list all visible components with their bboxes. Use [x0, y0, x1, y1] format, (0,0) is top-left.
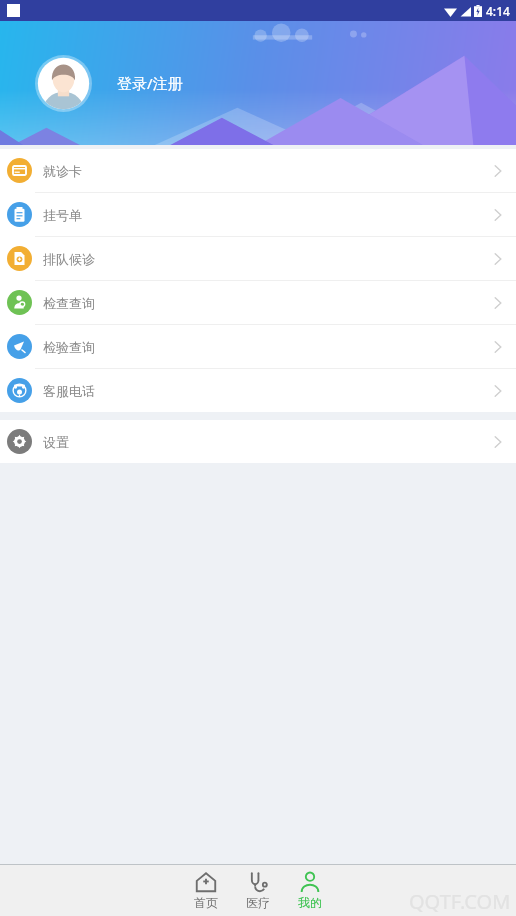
staticText: 检查查询	[43, 295, 95, 311]
staticText: 首页	[194, 895, 218, 910]
button[interactable]: 检查查询	[0, 281, 516, 324]
button[interactable]: 首页	[180, 865, 232, 916]
staticText: 排队候诊	[43, 251, 95, 267]
staticText: 登录/注册	[117, 73, 183, 93]
button[interactable]: 医疗	[232, 865, 284, 916]
button[interactable]: 客服电话	[0, 369, 516, 412]
staticText: 检验查询	[43, 339, 95, 355]
staticText: 4:14	[486, 3, 510, 19]
staticText: 设置	[43, 434, 69, 450]
staticText: 医疗	[246, 895, 270, 910]
staticText: 客服电话	[43, 383, 95, 399]
staticText: 就诊卡	[43, 163, 82, 179]
button[interactable]: 排队候诊	[0, 237, 516, 280]
button[interactable]: 设置	[0, 420, 516, 463]
button[interactable]: 我的	[284, 865, 336, 916]
staticText: 挂号单	[43, 207, 82, 223]
staticText: QQTF.COM	[409, 888, 511, 915]
button[interactable]: 检验查询	[0, 325, 516, 368]
button[interactable]: 就诊卡	[0, 149, 516, 192]
staticText: 我的	[298, 895, 322, 910]
button[interactable]	[35, 55, 92, 112]
button[interactable]: 挂号单	[0, 193, 516, 236]
